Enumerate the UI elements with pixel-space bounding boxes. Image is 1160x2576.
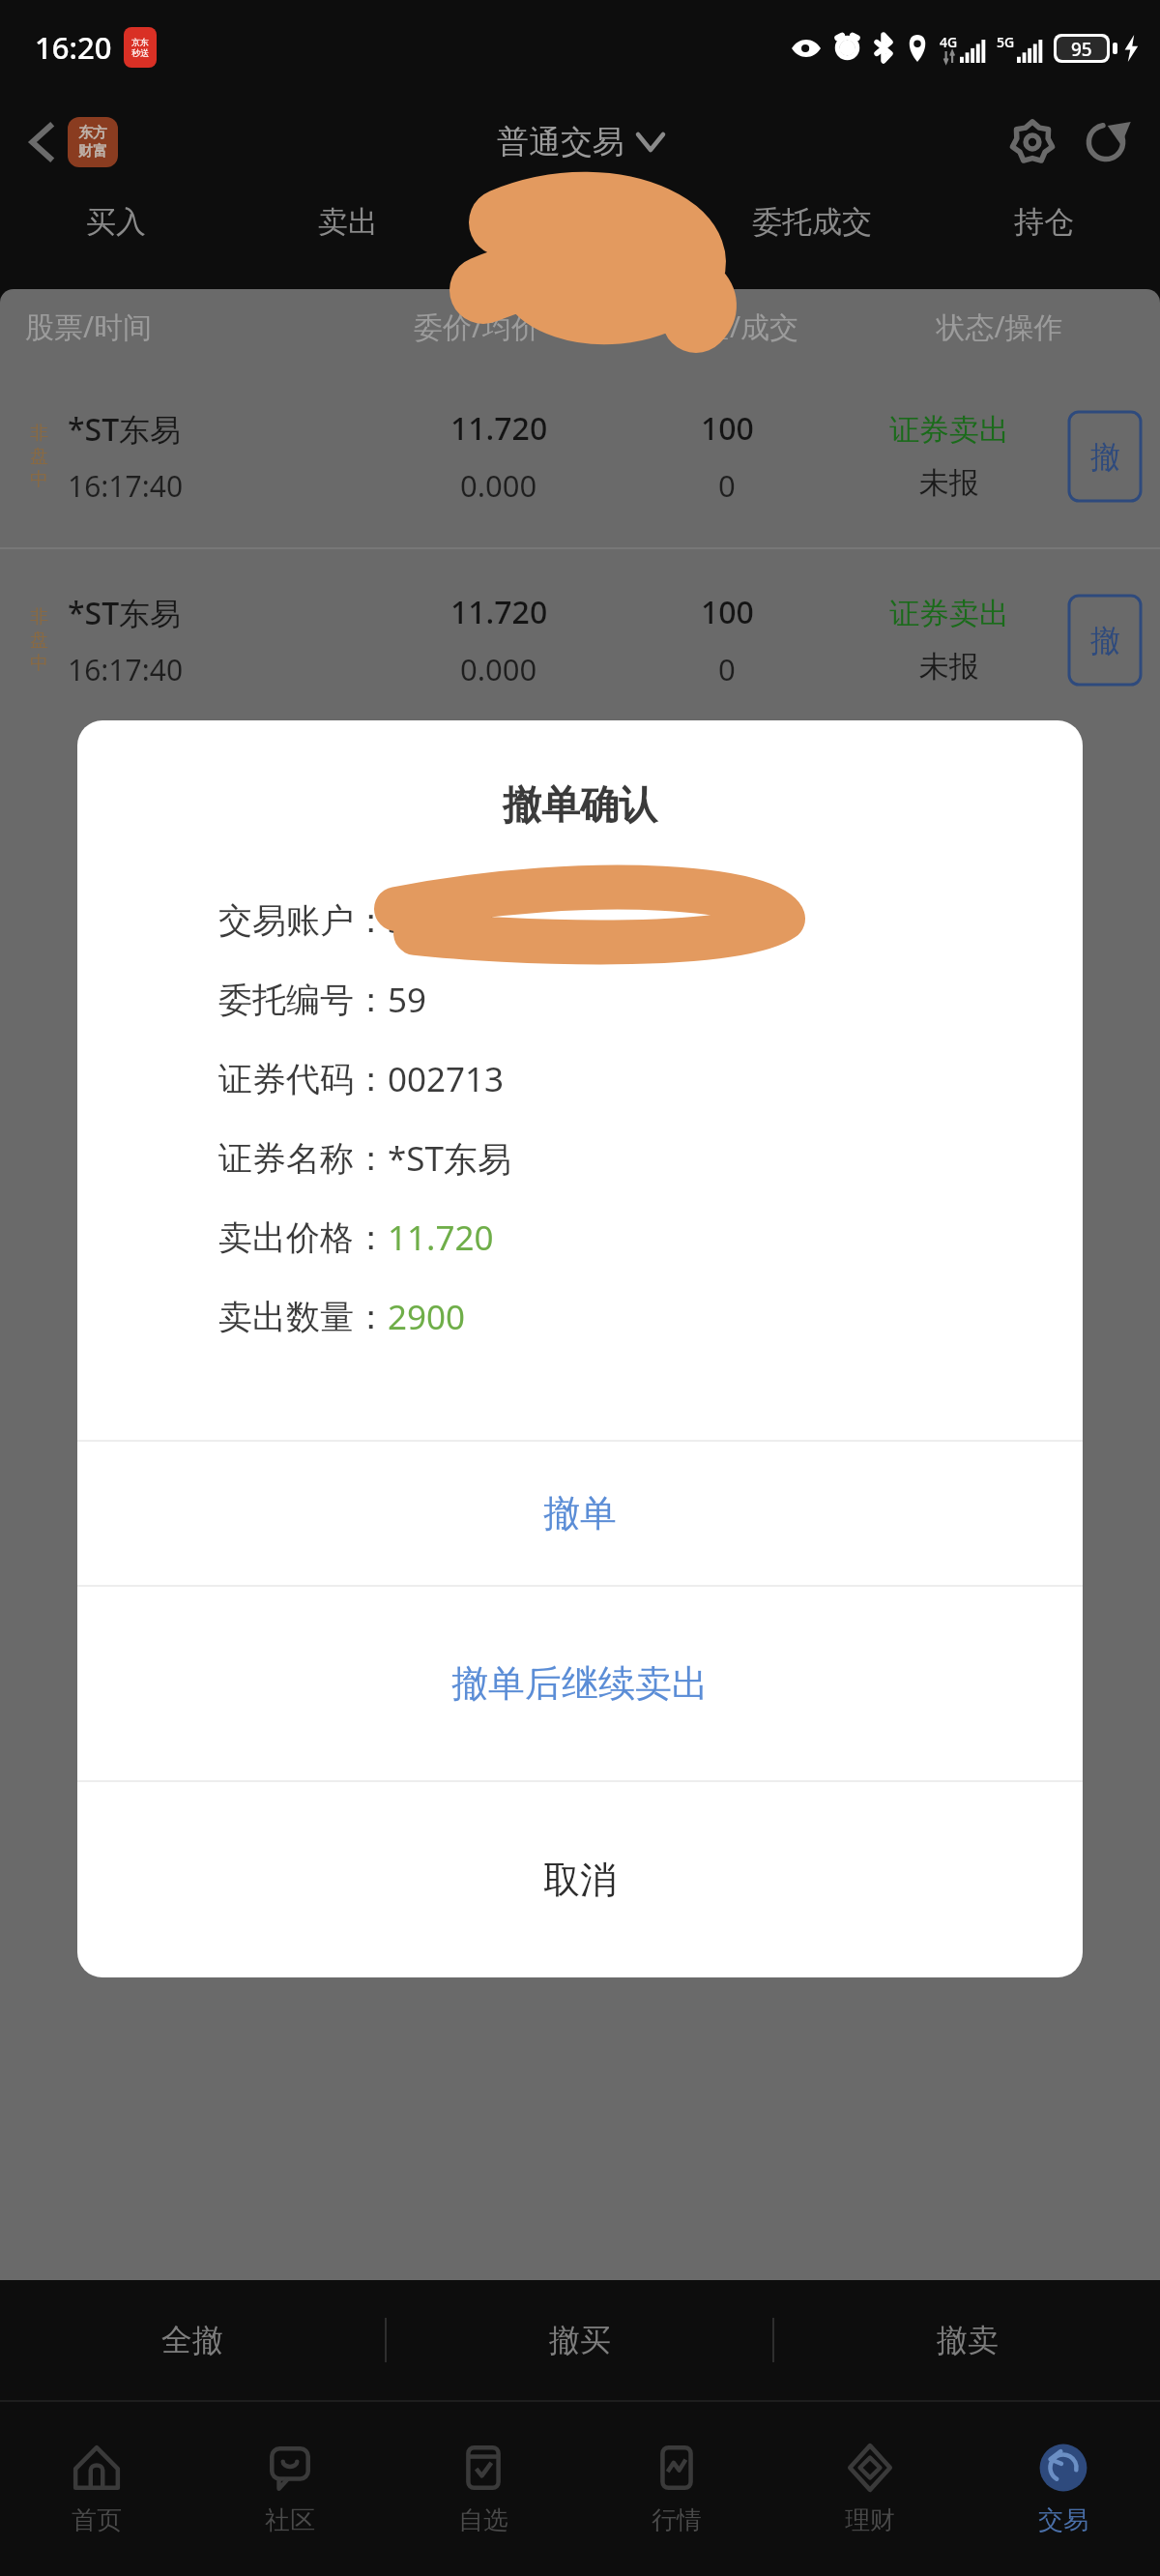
button[interactable]: 买入 <box>0 190 232 286</box>
button[interactable]: 委托成交 <box>696 190 928 286</box>
staticText: 11.720 <box>388 1215 494 1261</box>
button[interactable]: 全撤 <box>0 2280 385 2400</box>
button[interactable]: 理财 <box>773 2400 967 2576</box>
staticText: 2900 <box>388 1294 466 1340</box>
staticText: 盘 <box>30 445 48 468</box>
staticText: 社区 <box>265 2504 315 2536</box>
staticText: 自选 <box>458 2504 508 2536</box>
button[interactable]: 自选 <box>387 2400 580 2576</box>
staticText: 59 <box>388 977 427 1023</box>
button[interactable]: 普通交易 <box>489 114 671 170</box>
staticText: 11.720 <box>450 591 548 633</box>
staticText: 撤 <box>1090 438 1120 476</box>
staticText: 非 <box>30 422 48 445</box>
staticText: 持仓 <box>1014 203 1074 241</box>
staticText: 非 <box>30 605 48 629</box>
staticText: 4G <box>940 33 958 51</box>
staticText: 中 <box>30 652 48 675</box>
staticText: 撤 <box>1090 622 1120 659</box>
button[interactable]: 撤单 <box>464 190 696 286</box>
button[interactable]: Settings <box>1000 109 1065 175</box>
button[interactable]: 行情 <box>580 2400 773 2576</box>
staticText: 撤单确认 <box>77 780 1083 829</box>
staticText: 16:17:40 <box>68 650 184 689</box>
button[interactable]: 撤单 <box>77 1442 1083 1585</box>
staticText: 100 <box>701 591 754 633</box>
staticText: 卖出 <box>318 203 378 241</box>
staticText: 首页 <box>72 2504 122 2536</box>
staticText: 买入 <box>86 203 146 241</box>
button[interactable]: 持仓 <box>928 190 1160 286</box>
staticText: 京东 <box>131 37 149 47</box>
staticText: 股票/时间 <box>25 307 348 346</box>
staticText: 委价/均价 <box>348 307 606 346</box>
staticText: 未报 <box>919 464 979 502</box>
staticText: 证券卖出 <box>889 411 1009 449</box>
button[interactable]: Back <box>21 111 124 173</box>
button[interactable]: Refresh <box>1073 109 1139 175</box>
staticText: 中 <box>30 468 48 491</box>
staticText: 0.000 <box>460 465 537 506</box>
staticText: 撤单 <box>543 1490 617 1537</box>
button[interactable]: 撤 <box>1069 412 1141 501</box>
staticText: 撤单后继续卖出 <box>451 1660 709 1707</box>
staticText: 行情 <box>652 2504 702 2536</box>
staticText: 002713 <box>388 1056 505 1102</box>
staticText: *ST东易 <box>68 592 182 634</box>
staticText: 全撤 <box>161 2321 223 2359</box>
staticText: 证券名称： <box>218 1137 388 1180</box>
button[interactable]: 首页 <box>0 2400 193 2576</box>
staticText: 撤卖 <box>937 2321 999 2359</box>
staticText: 100 <box>701 407 754 450</box>
staticText: 理财 <box>845 2504 895 2536</box>
staticText: *ST东易 <box>388 1135 511 1182</box>
staticText: 95 <box>1071 37 1092 60</box>
staticText: 撤买 <box>549 2321 611 2359</box>
staticText: 16:17:40 <box>68 466 184 506</box>
staticText: 交易 <box>1038 2504 1088 2536</box>
staticText: 证券代码： <box>218 1058 388 1100</box>
button[interactable]: 撤 <box>1069 596 1141 685</box>
staticText: 财富 <box>78 142 107 161</box>
staticText: 证券卖出 <box>889 595 1009 632</box>
button[interactable]: 社区 <box>193 2400 387 2576</box>
staticText: 卖出价格： <box>218 1216 388 1259</box>
button[interactable]: 交易 <box>967 2400 1160 2576</box>
staticText: 11.720 <box>450 407 548 450</box>
staticText: 东方 <box>78 124 107 142</box>
staticText: 31345) <box>388 897 495 944</box>
staticText: 普通交易 <box>497 122 624 162</box>
button[interactable]: 撤买 <box>387 2280 772 2400</box>
staticText: 取消 <box>543 1857 617 1903</box>
other: Back <box>27 121 56 163</box>
staticText: 委托编号： <box>218 979 388 1021</box>
staticText: 0 <box>718 649 736 689</box>
button[interactable]: 撤单后继续卖出 <box>77 1587 1083 1780</box>
staticText: 交易账户： <box>218 899 388 942</box>
staticText: 状态/操作 <box>864 307 1135 346</box>
staticText: 委量/成交 <box>606 307 864 346</box>
staticText: 0.000 <box>460 649 537 689</box>
button[interactable]: 卖出 <box>232 190 464 286</box>
staticText: 委托成交 <box>752 203 872 241</box>
staticText: 0 <box>718 465 736 506</box>
staticText: 未报 <box>919 648 979 686</box>
staticText: 16:20 <box>35 27 112 68</box>
staticText: 盘 <box>30 629 48 652</box>
staticText: 秒送 <box>131 47 149 58</box>
button[interactable]: 撤卖 <box>774 2280 1160 2400</box>
staticText: 卖出数量： <box>218 1296 388 1338</box>
staticText: 5G <box>997 33 1015 51</box>
button[interactable]: 取消 <box>77 1782 1083 1977</box>
staticText: *ST东易 <box>68 408 182 451</box>
